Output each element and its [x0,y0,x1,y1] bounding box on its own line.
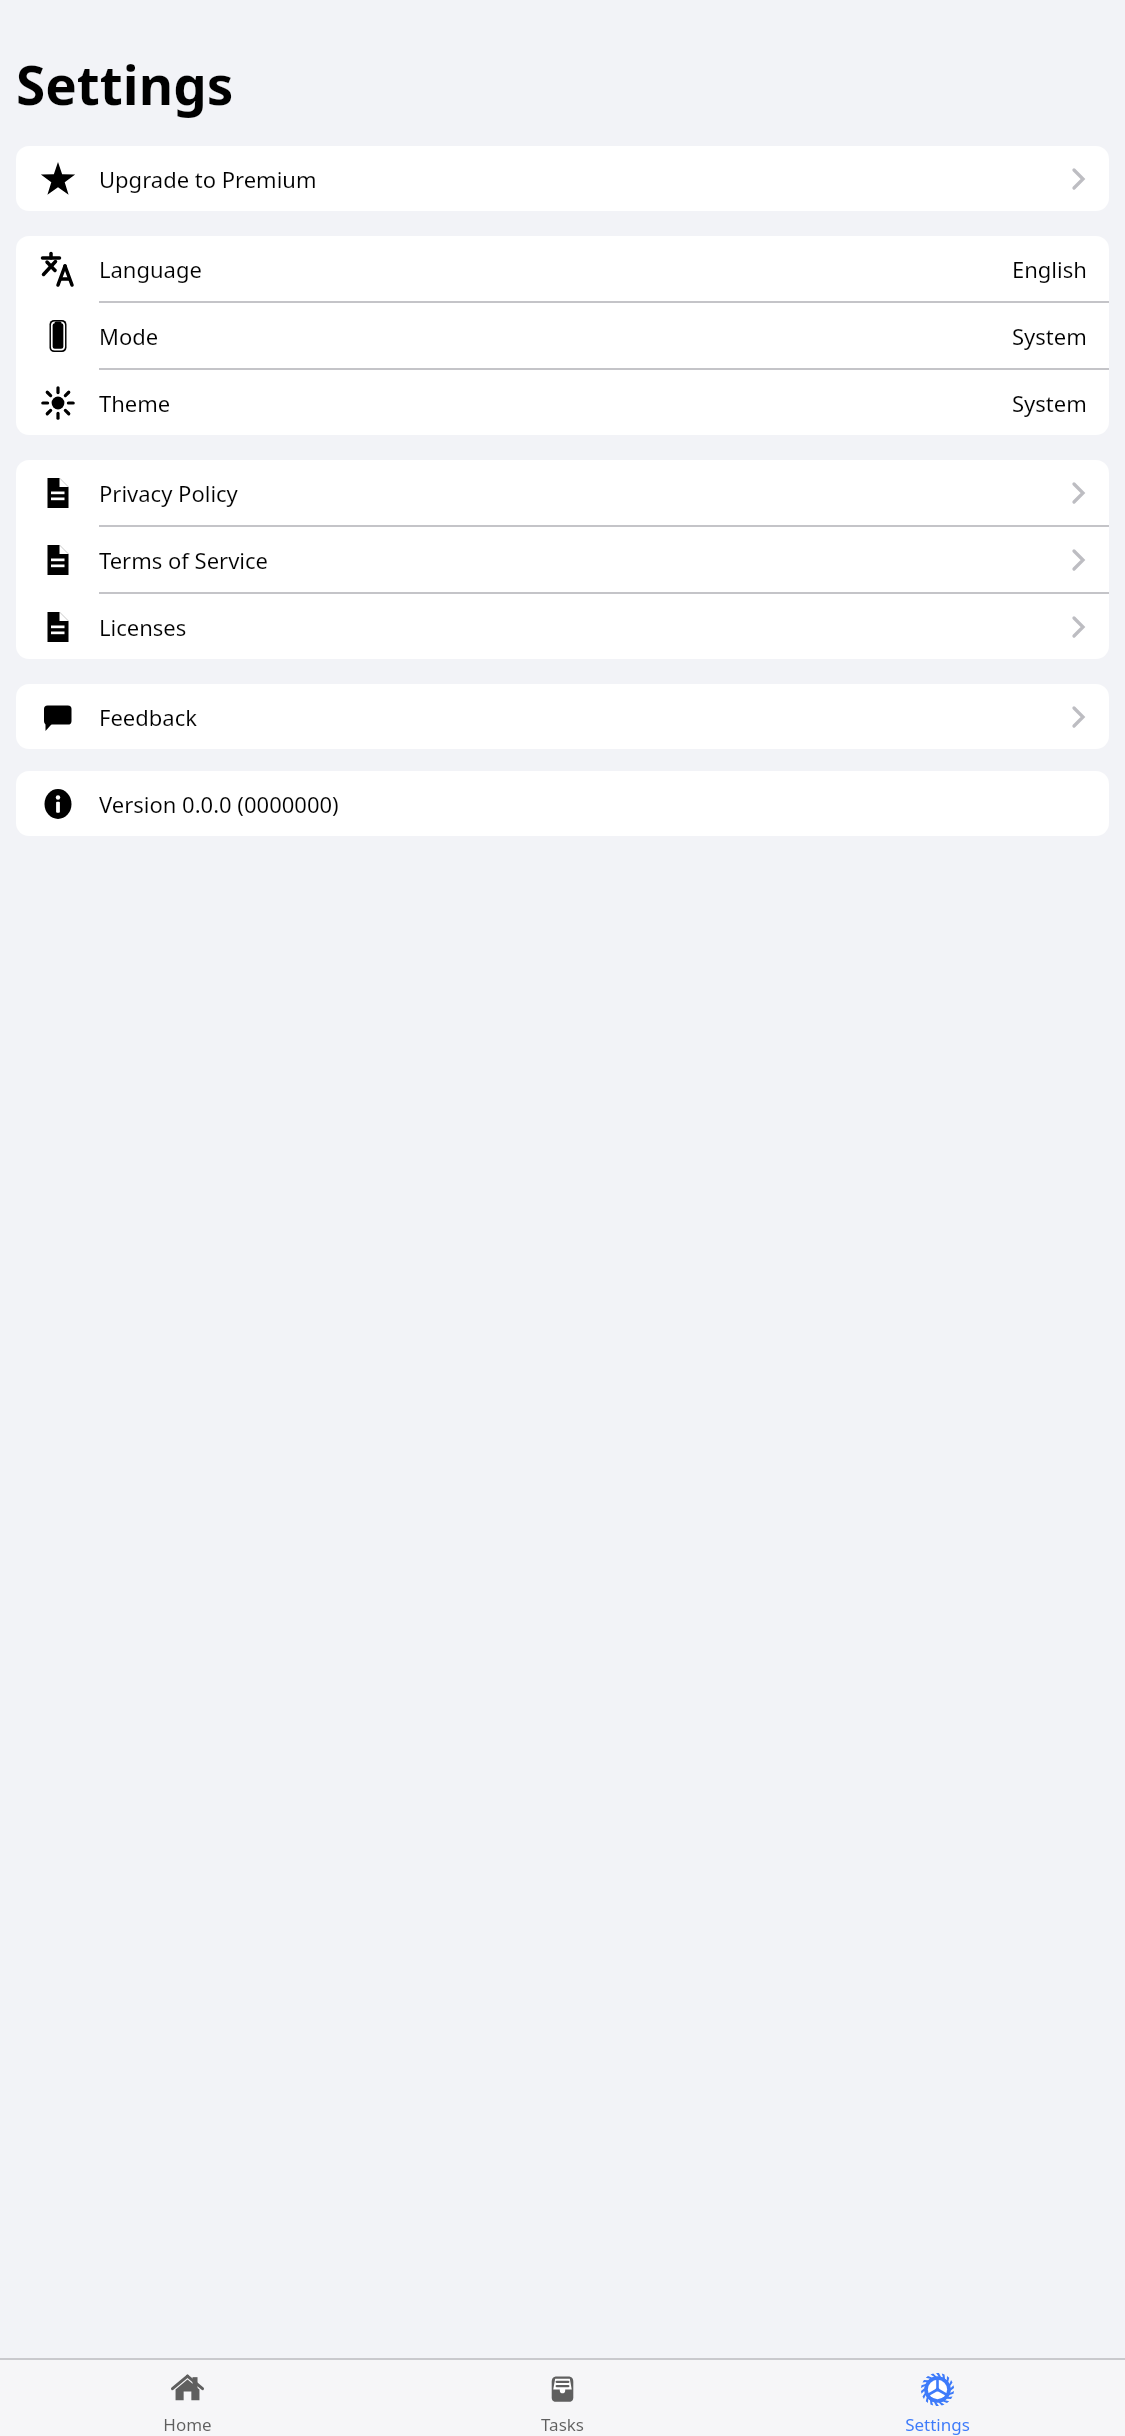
staticText: System [1012,321,1087,351]
button[interactable]: Tasks [375,2360,750,2436]
button[interactable]: Settings [750,2360,1125,2436]
staticText: Settings [16,48,234,120]
button[interactable]: Version 0.0.0 (0000000) [16,771,1109,836]
staticText: System [1012,388,1087,418]
staticText: Licenses [99,612,1063,642]
button[interactable]: Licenses [16,594,1109,659]
button[interactable]: Terms of Service [16,527,1109,594]
staticText: Feedback [99,702,1063,732]
staticText: Upgrade to Premium [99,164,1063,194]
button[interactable]: Theme [16,370,1109,435]
button[interactable]: Feedback [16,684,1109,749]
staticText: Privacy Policy [99,478,1063,508]
button[interactable]: Home [0,2360,375,2436]
staticText: Mode [99,321,1012,351]
staticText: Home [163,2413,212,2436]
button[interactable]: Mode [16,303,1109,370]
staticText: Theme [99,388,1012,418]
staticText: Version 0.0.0 (0000000) [99,789,1085,819]
staticText: Terms of Service [99,545,1063,575]
staticText: English [1012,254,1087,284]
staticText: Tasks [541,2413,584,2436]
staticText: Settings [905,2413,970,2436]
staticText: Language [99,254,1012,284]
button[interactable]: Privacy Policy [16,460,1109,527]
button[interactable]: Language [16,236,1109,303]
button[interactable]: Upgrade to Premium [16,146,1109,211]
